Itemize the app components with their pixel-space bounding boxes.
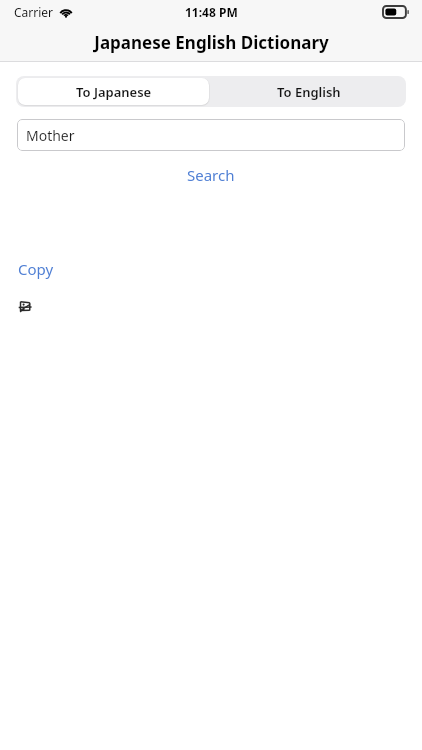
- button[interactable]: Mother: [17, 119, 405, 151]
- staticText: Search: [187, 165, 235, 185]
- staticText: Carrier: [14, 4, 54, 20]
- other: Translation result: haha (mother): [18, 300, 32, 314]
- staticText: To English: [277, 83, 341, 101]
- button[interactable]: Copy: [8, 256, 64, 282]
- staticText: 11:48 PM: [185, 4, 238, 20]
- button[interactable]: Search: [177, 162, 245, 188]
- staticText: Japanese English Dictionary: [94, 31, 329, 54]
- button[interactable]: To Japanese: [18, 78, 209, 105]
- staticText: Mother: [26, 126, 75, 145]
- button[interactable]: To English: [211, 76, 406, 107]
- staticText: To Japanese: [76, 83, 152, 101]
- staticText: Copy: [18, 259, 54, 279]
